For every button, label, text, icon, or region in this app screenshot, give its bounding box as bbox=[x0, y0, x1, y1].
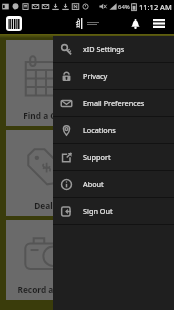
staticText: 64% bbox=[118, 3, 130, 11]
staticText: 11:12 AM bbox=[139, 2, 172, 12]
staticText: Rewards bbox=[111, 200, 147, 211]
button[interactable]: About bbox=[53, 171, 174, 197]
staticText: Record a Visit bbox=[17, 284, 74, 295]
staticText: Deals bbox=[34, 200, 57, 211]
button[interactable]: Notifications bbox=[124, 13, 146, 34]
button[interactable]: xID Settings bbox=[53, 36, 174, 62]
button[interactable]: Email Preferences bbox=[53, 90, 174, 116]
button[interactable]: Scan barcode bbox=[6, 16, 22, 31]
button[interactable]: Record a Visit bbox=[6, 220, 85, 300]
staticText: Locations bbox=[83, 125, 116, 135]
staticText: Email Preferences bbox=[83, 98, 145, 108]
staticText: Find a Club bbox=[23, 110, 69, 121]
button[interactable]: Schedule bbox=[89, 40, 168, 126]
staticText: Privacy bbox=[83, 71, 108, 81]
button[interactable]: Find a Club bbox=[6, 40, 85, 126]
staticText: About bbox=[83, 179, 104, 189]
button[interactable]: Support bbox=[53, 144, 174, 170]
staticText: Sign Out bbox=[83, 206, 113, 216]
staticText: xID Settings bbox=[83, 44, 125, 54]
staticText: Schedule bbox=[110, 110, 148, 121]
button[interactable]: Sign Out bbox=[53, 198, 174, 224]
button[interactable]: Menu bbox=[148, 13, 170, 34]
button[interactable]: Privacy bbox=[53, 63, 174, 89]
button[interactable]: Rewards bbox=[89, 130, 168, 216]
staticText: Support bbox=[83, 152, 111, 162]
button[interactable]: Locations bbox=[53, 117, 174, 143]
button[interactable]: Deals bbox=[6, 130, 85, 216]
